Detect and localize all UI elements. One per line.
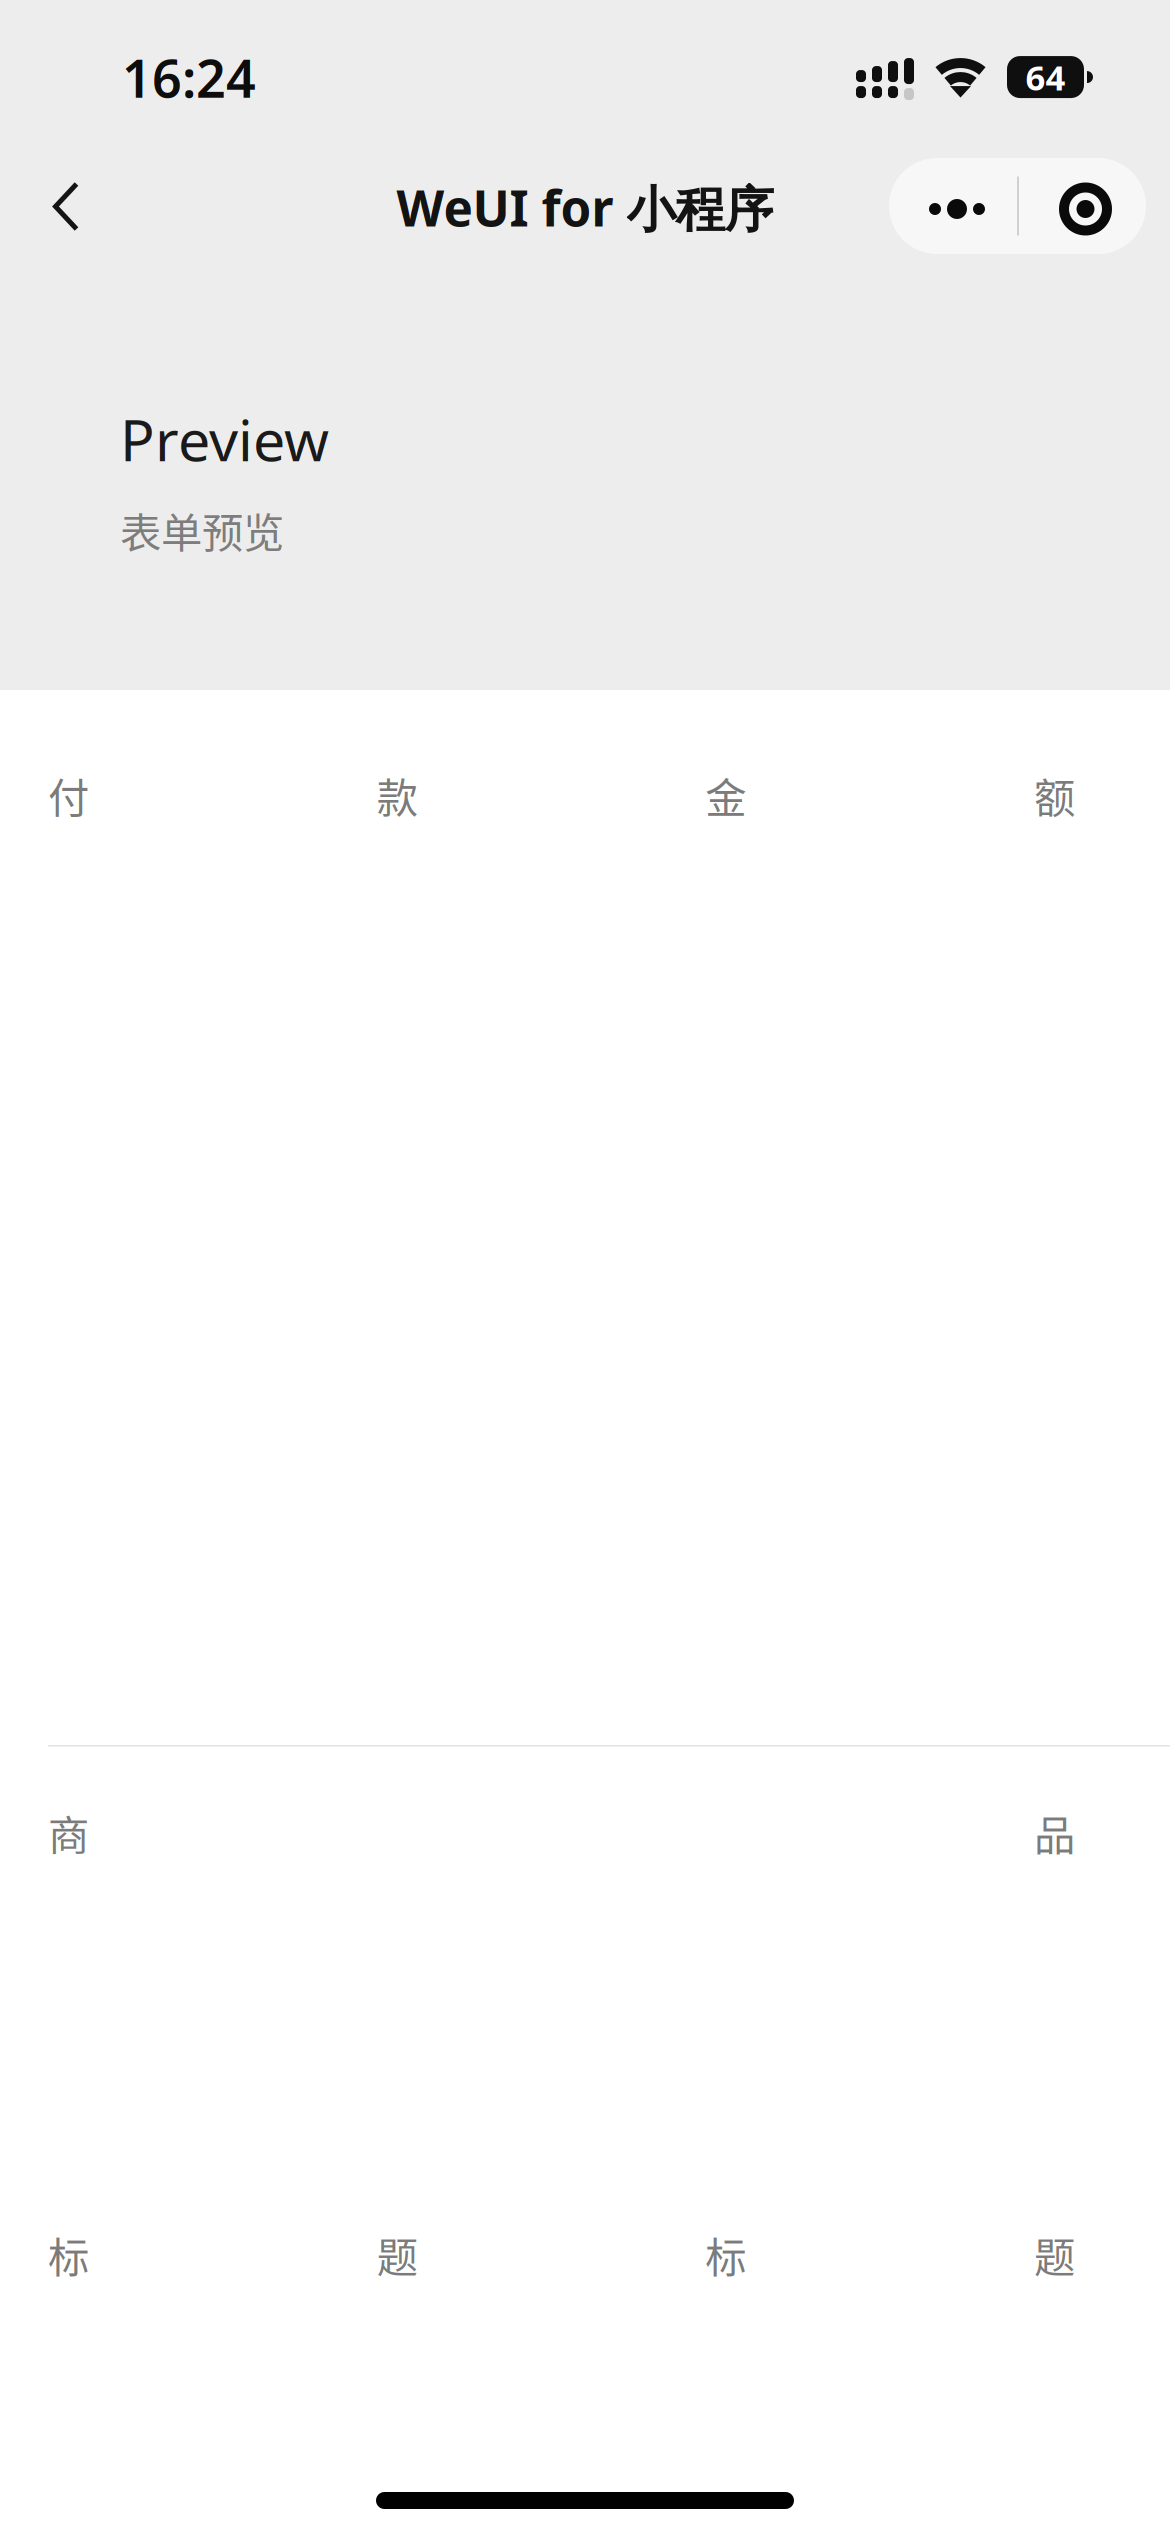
staticText: Preview (120, 401, 329, 477)
staticText: 额 (1034, 765, 1075, 825)
staticText: 款 (377, 765, 418, 825)
staticText: WeUI for 小程序 (396, 175, 773, 240)
staticText: 16:24 (122, 43, 256, 112)
staticText: 品 (1034, 1803, 1075, 1863)
button[interactable]: More (889, 158, 1017, 254)
staticText: 商 (48, 1803, 89, 1863)
staticText: 金 (705, 765, 746, 825)
button[interactable]: Back (14, 150, 118, 262)
staticText: 付 (48, 765, 89, 825)
staticText: 题 (1034, 2225, 1075, 2285)
staticText: 标 (705, 2225, 746, 2285)
button[interactable]: Close mini program (1019, 158, 1146, 254)
staticText: 标 (48, 2225, 89, 2285)
staticText: 题 (377, 2225, 418, 2285)
staticText: 64 (1025, 54, 1065, 100)
staticText: 表单预览 (120, 500, 284, 560)
